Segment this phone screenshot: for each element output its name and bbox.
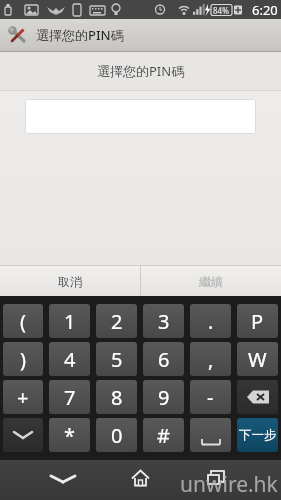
staticText: 6:20 (252, 1, 278, 19)
staticText: - (207, 384, 214, 411)
button[interactable]: ( (3, 304, 43, 338)
staticText: P (251, 308, 264, 335)
button[interactable]: 6 (143, 342, 184, 376)
staticText: 2 (111, 308, 123, 335)
button[interactable]: 繼續 (141, 266, 281, 296)
staticText: ( (20, 308, 26, 335)
button[interactable]: 1 (49, 304, 90, 338)
staticText: 選擇您的PIN碼 (97, 62, 185, 80)
button[interactable]: , (190, 342, 231, 376)
button[interactable] (131, 469, 150, 489)
staticText: 7 (64, 384, 76, 411)
button[interactable]: P (237, 304, 278, 338)
button[interactable]: # (143, 418, 184, 452)
button[interactable]: 9 (143, 380, 184, 414)
staticText: 9 (158, 384, 170, 411)
button[interactable] (25, 99, 256, 134)
staticText: 選擇您的PIN碼 (36, 26, 124, 44)
staticText: 3 (158, 308, 170, 335)
button[interactable]: 3 (143, 304, 184, 338)
button[interactable] (3, 418, 43, 452)
button[interactable]: 8 (96, 380, 137, 414)
button[interactable] (49, 473, 77, 487)
button[interactable]: 5 (96, 342, 137, 376)
staticText: # (157, 422, 170, 449)
button[interactable]: 2 (96, 304, 137, 338)
button[interactable]: ) (3, 342, 43, 376)
staticText: * (64, 422, 76, 449)
button[interactable]: 選擇您的PIN碼 (0, 19, 281, 51)
button[interactable]: * (49, 418, 90, 452)
button[interactable]: 7 (49, 380, 90, 414)
staticText: 8 (111, 384, 123, 411)
button[interactable]: 4 (49, 342, 90, 376)
button[interactable] (190, 418, 231, 452)
staticText: 4 (64, 346, 76, 373)
button[interactable]: . (190, 304, 231, 338)
staticText: 0 (111, 422, 123, 449)
staticText: unwire.hk (180, 470, 278, 499)
button[interactable]: 0 (96, 418, 137, 452)
staticText: 繼續 (199, 274, 223, 289)
staticText: 取消 (58, 274, 82, 289)
button[interactable]: 下一步 (237, 418, 278, 452)
staticText: + (17, 384, 29, 411)
button[interactable]: - (190, 380, 231, 414)
staticText: 84% (213, 5, 229, 16)
button[interactable] (206, 470, 226, 487)
staticText: 5 (111, 346, 123, 373)
staticText: . (208, 308, 214, 335)
button[interactable]: W (237, 342, 278, 376)
button[interactable]: 取消 (0, 266, 140, 296)
staticText: 下一步 (239, 427, 277, 443)
staticText: 6 (158, 346, 170, 373)
staticText: , (208, 346, 214, 373)
button[interactable] (237, 380, 278, 414)
button[interactable]: + (3, 380, 43, 414)
staticText: 1 (64, 308, 76, 335)
staticText: ) (20, 346, 26, 373)
staticText: W (248, 346, 267, 373)
